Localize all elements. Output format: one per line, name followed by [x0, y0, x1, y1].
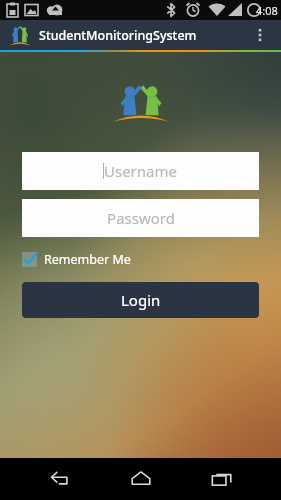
button[interactable]: Home [118, 458, 164, 500]
button[interactable]: Back [36, 458, 82, 500]
staticText: Login [121, 290, 161, 310]
staticText: Remember Me [44, 251, 131, 268]
staticText: Password [107, 208, 175, 228]
staticText: 4:08 [256, 3, 278, 18]
button[interactable]: Login [22, 282, 259, 318]
button[interactable]: Remember Me [22, 249, 131, 270]
button[interactable]: More options [247, 22, 273, 48]
staticText: Username [104, 161, 177, 181]
button[interactable]: Password [22, 199, 259, 237]
button[interactable]: Username [22, 152, 259, 190]
button[interactable]: Recent apps [199, 458, 245, 500]
staticText: StudentMonitoringSystem [39, 27, 197, 44]
